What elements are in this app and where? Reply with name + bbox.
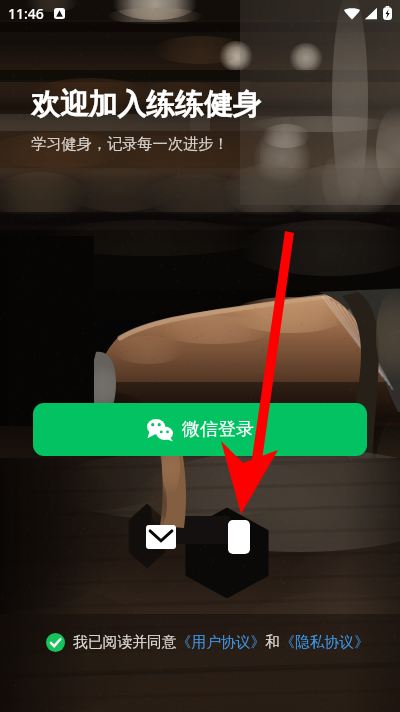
staticText: 11:46 [8, 4, 44, 23]
button[interactable]: Agree to terms [43, 630, 67, 654]
button[interactable]: Phone login [218, 516, 260, 558]
button[interactable]: Email login [140, 516, 182, 558]
staticText: 我已阅读并同意《用户协议》和《隐私协议》 [73, 633, 369, 652]
staticText: 欢迎加入练练健身 [31, 86, 262, 122]
button[interactable]: 微信登录 [33, 403, 367, 456]
staticText: 微信登录 [182, 418, 254, 441]
staticText: 学习健身，记录每一次进步！ [31, 134, 229, 153]
